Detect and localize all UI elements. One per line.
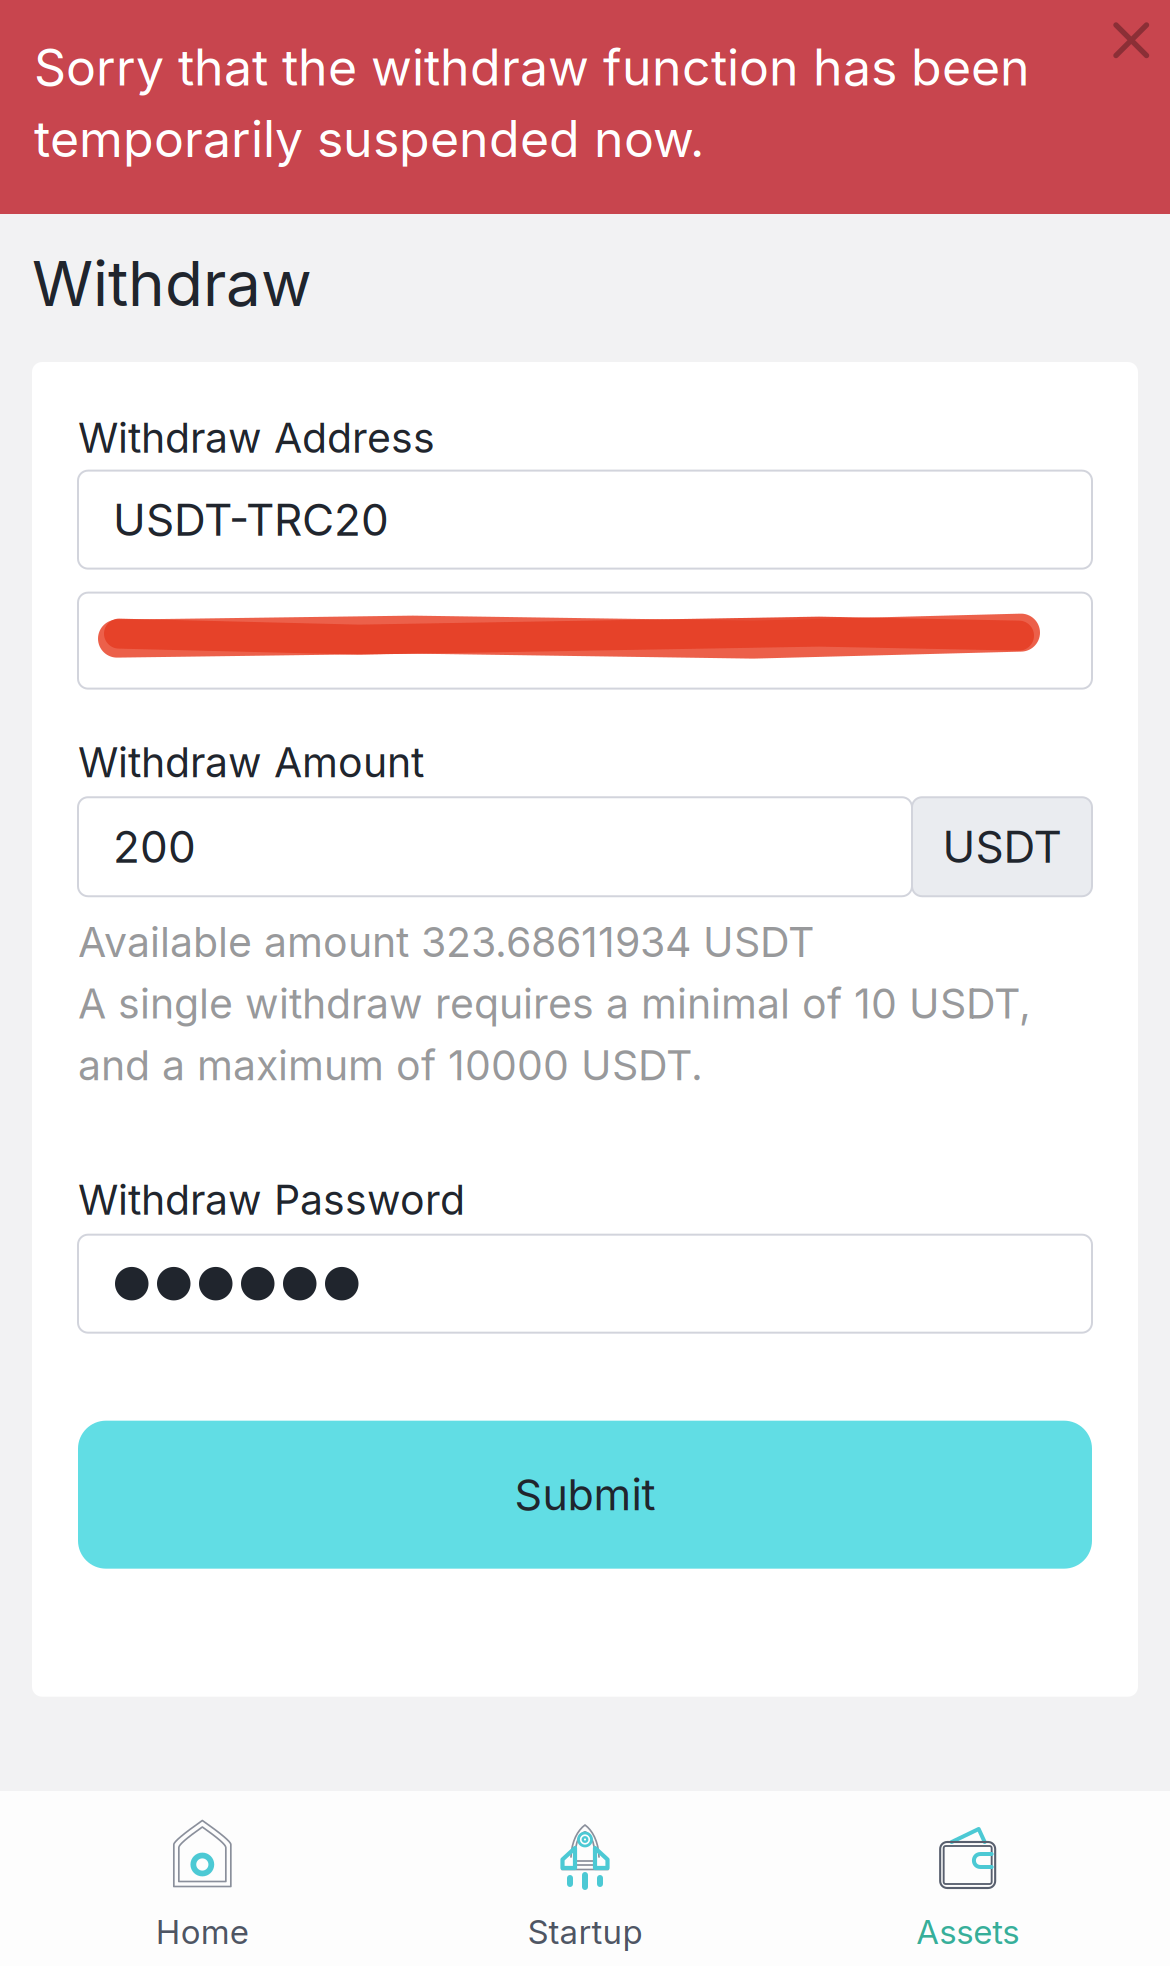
staticText: Available amount 323.68611934 USDT A sin… xyxy=(78,917,1031,1090)
staticText: Withdraw Address xyxy=(78,413,435,463)
staticText: Withdraw xyxy=(32,246,312,321)
staticText: Startup xyxy=(527,1912,642,1952)
staticText: Submit xyxy=(514,1469,655,1521)
button[interactable]: Close xyxy=(1082,0,1170,90)
staticText: Sorry that the withdraw function has bee… xyxy=(34,37,1030,169)
staticText: Withdraw Amount xyxy=(78,738,424,787)
button[interactable]: Assets xyxy=(776,1791,1159,1966)
button[interactable]: Home xyxy=(11,1791,394,1966)
button[interactable]: Startup xyxy=(394,1791,776,1966)
staticText: Home xyxy=(156,1912,249,1952)
staticText: Withdraw Password xyxy=(78,1175,465,1225)
staticText: USDT xyxy=(942,820,1061,873)
button[interactable]: Submit xyxy=(78,1421,1092,1569)
staticText: 200 xyxy=(113,820,196,873)
staticText: Assets xyxy=(916,1912,1019,1952)
staticText: USDT-TRC20 xyxy=(113,493,389,546)
